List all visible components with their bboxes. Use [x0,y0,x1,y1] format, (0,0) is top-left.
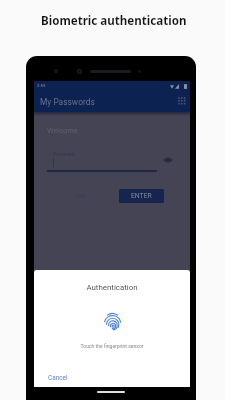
staticText: Biometric authentication [41,13,187,29]
button[interactable]: Cancel [44,370,71,385]
staticText: 2:59 [37,83,46,88]
button[interactable]: Show password [160,152,176,168]
staticText: Touch the fingerprint sensor [34,343,190,349]
button[interactable]: ENTER [119,189,164,203]
staticText: ENTER [131,192,152,200]
staticText: Authentication [34,283,190,292]
staticText: Password [53,151,75,157]
staticText: Welcome [47,126,78,135]
staticText: My Passwords [40,97,95,107]
staticText: FAQ [76,193,86,199]
button[interactable]: Apps [175,94,187,106]
staticText: Cancel [48,374,68,382]
